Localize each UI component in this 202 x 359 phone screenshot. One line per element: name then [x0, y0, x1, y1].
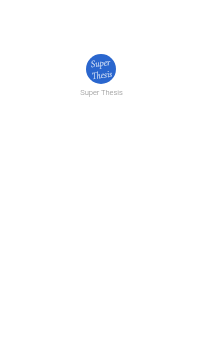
staticText: Thesis [91, 68, 113, 82]
staticText: Super [90, 56, 111, 70]
button[interactable]: Super Thesis logo [86, 54, 116, 84]
staticText: Super Thesis [80, 88, 123, 97]
